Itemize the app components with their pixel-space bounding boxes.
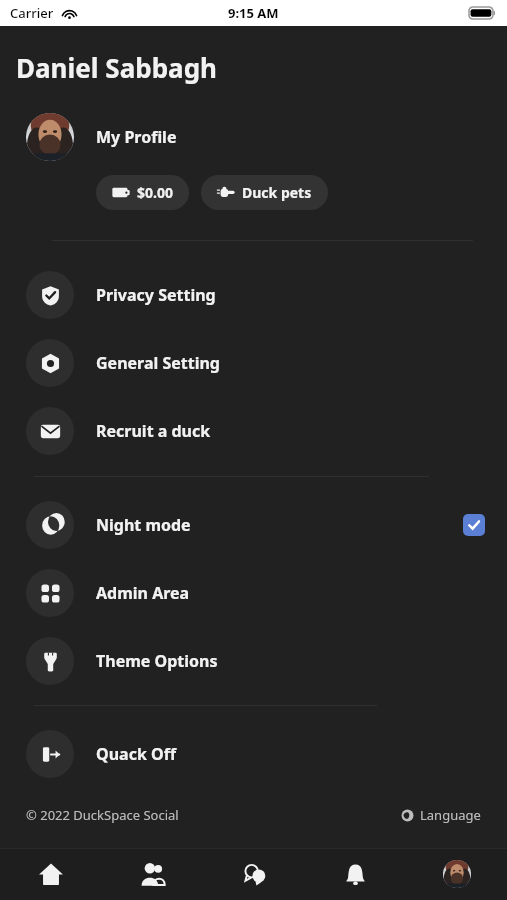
staticText: Recruit a duck <box>96 420 211 442</box>
button[interactable]: Notifications <box>305 848 406 900</box>
staticText: Night mode <box>96 514 191 536</box>
button[interactable]: Night mode enabled <box>463 514 485 536</box>
staticText: 9:15 AM <box>228 4 279 22</box>
button[interactable]: Night mode <box>0 491 507 559</box>
button[interactable]: $0.00 <box>96 175 189 210</box>
button[interactable]: Admin Area <box>0 559 507 627</box>
button[interactable]: Home <box>0 848 102 900</box>
button[interactable]: Language <box>397 802 485 828</box>
staticText: © 2022 DuckSpace Social <box>26 806 179 824</box>
staticText: Admin Area <box>96 582 190 604</box>
button[interactable]: Messages <box>204 848 305 900</box>
staticText: My Profile <box>96 126 177 148</box>
staticText: Carrier <box>10 4 54 22</box>
staticText: Privacy Setting <box>96 284 216 306</box>
button[interactable]: Profile <box>406 848 507 900</box>
staticText: $0.00 <box>137 183 173 202</box>
button[interactable]: Friends <box>102 848 204 900</box>
staticText: Daniel Sabbagh <box>16 50 217 85</box>
staticText: Language <box>420 806 481 824</box>
button[interactable]: General Setting <box>0 329 507 397</box>
staticText: Quack Off <box>96 743 176 765</box>
staticText: Theme Options <box>96 650 218 672</box>
staticText: General Setting <box>96 352 220 374</box>
staticText: Duck pets <box>242 183 312 202</box>
button[interactable]: My Profile <box>0 108 507 166</box>
button[interactable]: Quack Off <box>0 720 507 788</box>
button[interactable]: Privacy Setting <box>0 261 507 329</box>
button[interactable]: Recruit a duck <box>0 397 507 465</box>
button[interactable]: Duck pets <box>201 175 328 210</box>
button[interactable]: Theme Options <box>0 627 507 695</box>
